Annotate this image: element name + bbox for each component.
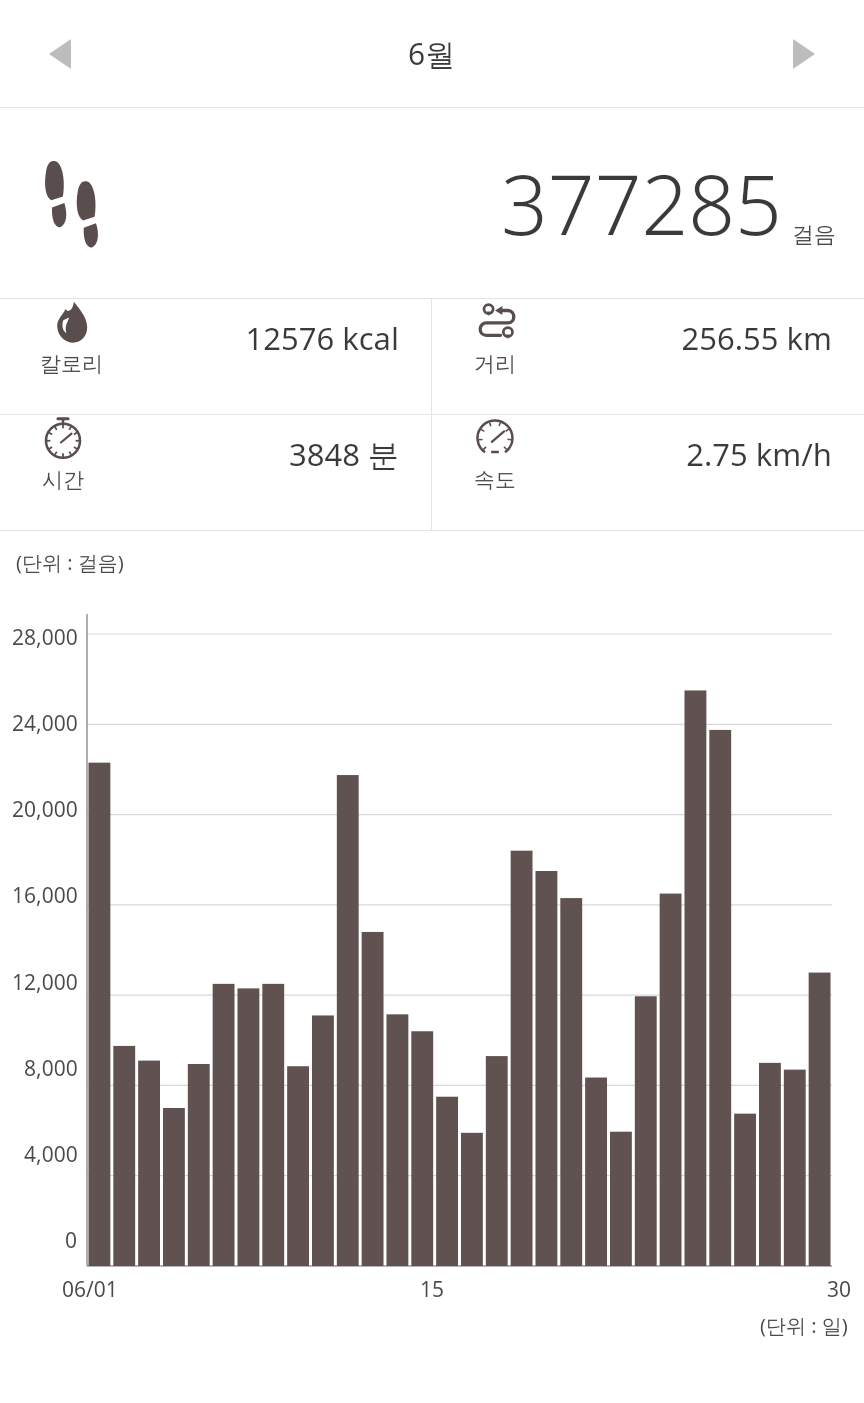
staticText: 2.75 km/h [686, 433, 832, 475]
staticText: 15 [420, 1275, 445, 1304]
button[interactable]: 시간 [0, 415, 431, 493]
staticText: 8,000 [24, 1054, 78, 1083]
staticText: 12576 kcal [245, 317, 399, 359]
staticText: 칼로리 [40, 351, 103, 377]
staticText: 4,000 [24, 1140, 78, 1169]
staticText: 24,000 [12, 709, 78, 738]
button[interactable]: 칼로리 [0, 299, 431, 377]
staticText: 6월 [408, 33, 456, 74]
button[interactable]: 거리 [432, 299, 864, 377]
staticText: 256.55 km [681, 317, 832, 359]
button[interactable]: 377285 [0, 108, 864, 298]
staticText: 12,000 [12, 968, 78, 997]
button[interactable]: 28,000 [0, 606, 864, 1306]
staticText: 시간 [42, 467, 84, 493]
staticText: 20,000 [12, 795, 78, 824]
staticText: 377285 [501, 147, 782, 259]
staticText: 거리 [474, 351, 516, 377]
staticText: 16,000 [12, 881, 78, 910]
staticText: 06/01 [62, 1275, 118, 1304]
staticText: 0 [65, 1226, 78, 1255]
staticText: 28,000 [12, 623, 78, 652]
button[interactable]: Next month [778, 28, 830, 80]
button[interactable]: Previous month [34, 28, 86, 80]
staticText: 30 [827, 1275, 852, 1304]
staticText: 걸음 [792, 221, 836, 249]
button[interactable]: 속도 [432, 415, 864, 493]
staticText: (단위 : 걸음) [16, 549, 124, 576]
staticText: (단위 : 일) [760, 1312, 848, 1339]
staticText: 3848 분 [289, 433, 399, 475]
staticText: 속도 [474, 467, 516, 493]
